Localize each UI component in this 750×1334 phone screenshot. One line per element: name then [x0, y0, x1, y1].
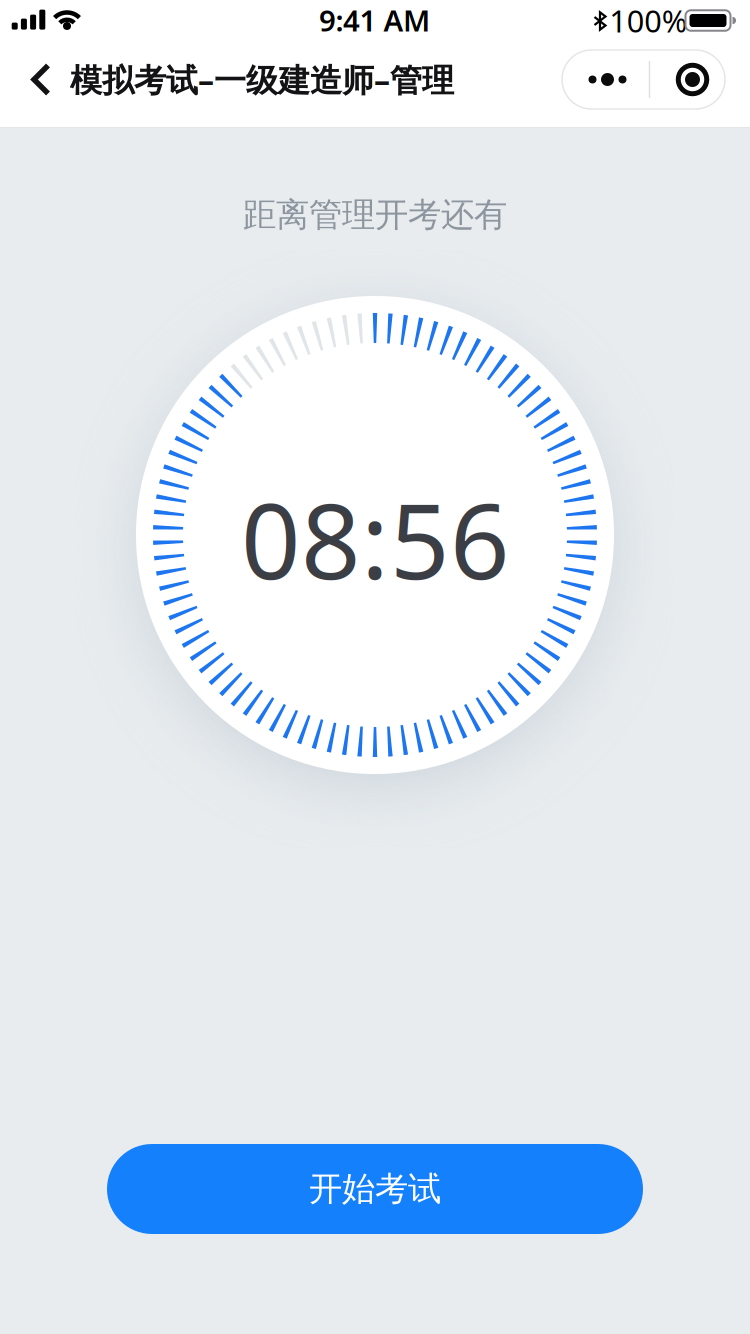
staticText: 模拟考试–一级建造师–管理: [70, 58, 454, 101]
staticText: 开始考试: [309, 1168, 441, 1209]
staticText: 距离管理开考还有: [243, 194, 507, 235]
staticText: 9:41 AM: [319, 0, 430, 39]
button[interactable]: Back: [0, 36, 70, 123]
button[interactable]: Close: [660, 50, 725, 109]
staticText: 100%: [609, 0, 687, 41]
staticText: 08:56: [241, 470, 509, 608]
button[interactable]: 开始考试: [107, 1144, 643, 1234]
button[interactable]: More: [564, 50, 651, 109]
